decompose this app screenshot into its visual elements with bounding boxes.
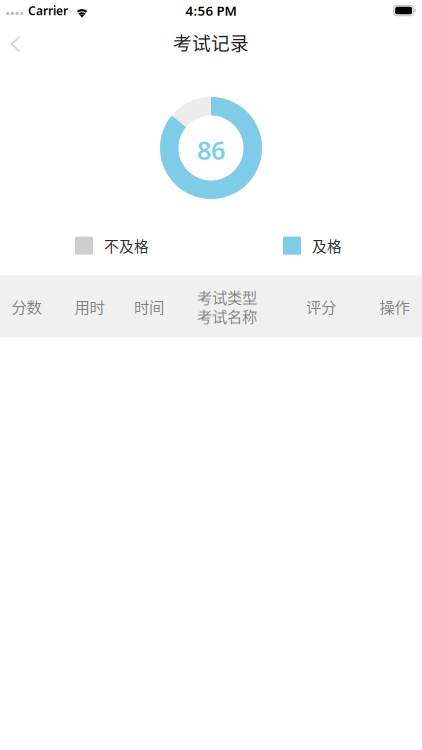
staticText: 及格: [312, 235, 342, 256]
staticText: Carrier: [28, 2, 68, 18]
staticText: 分数: [11, 295, 41, 317]
staticText: 4:56 PM: [185, 2, 236, 19]
button[interactable]: Back: [0, 22, 44, 62]
staticText: 不及格: [104, 235, 149, 256]
staticText: 用时: [74, 295, 104, 317]
staticText: 考试记录: [173, 28, 249, 55]
staticText: 考试类型: [197, 286, 257, 308]
staticText: 操作: [379, 295, 409, 317]
staticText: 86: [197, 133, 225, 167]
staticText: 时间: [134, 295, 164, 317]
staticText: 考试名称: [197, 305, 257, 327]
staticText: 评分: [306, 295, 336, 317]
